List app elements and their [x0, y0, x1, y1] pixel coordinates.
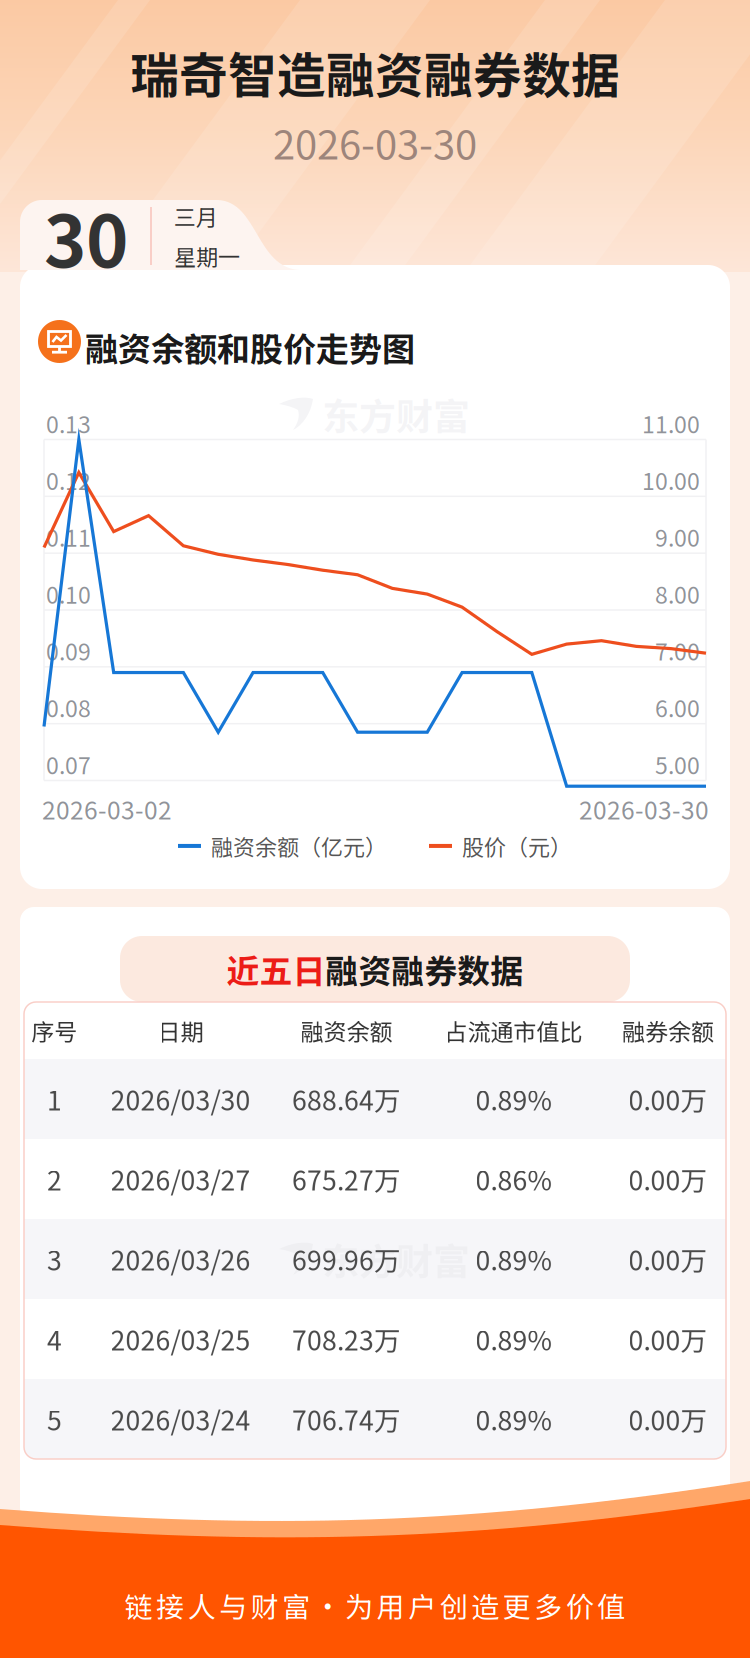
staticText: 三月 [174, 200, 218, 232]
staticText: 2026/03/25 [110, 1320, 250, 1358]
staticText: 融券余额 [622, 1014, 714, 1047]
staticText: 0.89% [475, 1400, 551, 1438]
staticText: 序号 [31, 1014, 77, 1047]
staticText: 0.13 [46, 406, 91, 440]
staticText: 2026-03-30 [579, 791, 709, 826]
staticText: 0.00万 [628, 1240, 707, 1278]
staticText: 链接人与财富·为用户创造更多价值 [125, 1585, 625, 1625]
staticText: 11.00 [642, 406, 700, 440]
staticText: 占流通市值比 [444, 1014, 582, 1047]
staticText: 2026-03-30 [273, 113, 477, 171]
staticText: 2026/03/30 [110, 1080, 250, 1118]
staticText: 2026/03/27 [110, 1160, 250, 1198]
staticText: 融资余额（亿元） [211, 830, 387, 862]
staticText: 0.89% [475, 1080, 551, 1118]
staticText: 2026/03/24 [110, 1400, 250, 1438]
staticText: 融资余额 [300, 1014, 392, 1047]
staticText: 6.00 [655, 691, 700, 724]
staticText: 0.09 [46, 634, 91, 667]
staticText: 2 [47, 1160, 62, 1198]
staticText: 9.00 [655, 520, 700, 553]
staticText: 0.11 [46, 520, 91, 553]
staticText: 0.00万 [628, 1400, 707, 1438]
staticText: 7.00 [655, 634, 700, 667]
staticText: 0.00万 [628, 1320, 707, 1358]
staticText: 2026/03/26 [110, 1240, 250, 1278]
staticText: 675.27万 [292, 1160, 401, 1198]
staticText: 0.86% [475, 1160, 551, 1198]
staticText: 股价（元） [462, 830, 572, 862]
staticText: 699.96万 [292, 1240, 401, 1278]
staticText: 706.74万 [292, 1400, 401, 1438]
staticText: 0.07 [46, 747, 91, 781]
staticText: 0.89% [475, 1320, 551, 1358]
staticText: 708.23万 [292, 1320, 401, 1358]
staticText: 瑞奇智造融资融券数据 [130, 37, 620, 107]
staticText: 3 [47, 1240, 62, 1278]
staticText: 688.64万 [292, 1080, 401, 1118]
staticText: 2026-03-02 [42, 791, 172, 826]
staticText: 30 [44, 184, 128, 288]
staticText: 0.00万 [628, 1160, 707, 1198]
staticText: 4 [47, 1320, 62, 1358]
staticText: 10.00 [642, 463, 700, 497]
staticText: 0.00万 [628, 1080, 707, 1118]
staticText: 0.08 [46, 691, 91, 724]
staticText: 融资融券数据 [325, 945, 523, 993]
staticText: 星期一 [174, 240, 240, 272]
staticText: 近五日 [226, 945, 325, 993]
staticText: 0.12 [46, 463, 91, 497]
staticText: 东方财富 [322, 1232, 470, 1286]
staticText: 0.10 [46, 577, 91, 610]
staticText: 融资余额和股价走势图 [85, 323, 415, 371]
staticText: 8.00 [655, 577, 700, 610]
staticText: 1 [47, 1080, 62, 1118]
staticText: 5.00 [655, 747, 700, 781]
staticText: 0.89% [475, 1240, 551, 1278]
staticText: 5 [47, 1400, 62, 1438]
staticText: 日期 [157, 1014, 203, 1047]
staticText: 东方财富 [322, 387, 470, 441]
